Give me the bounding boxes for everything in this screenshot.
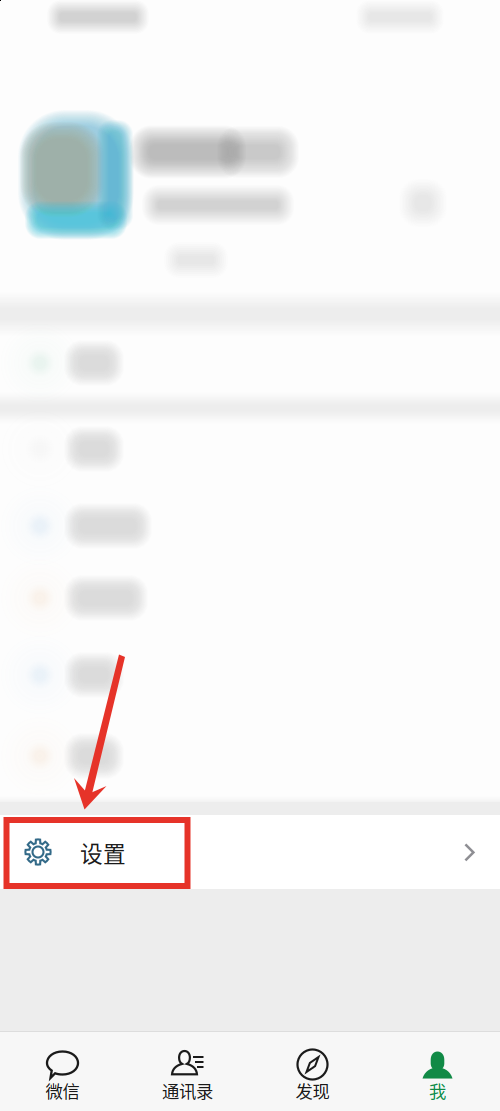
staticText: 通讯录 (162, 1078, 213, 1103)
button[interactable]: 我 (375, 1032, 500, 1111)
button[interactable]: 微信 (0, 1032, 125, 1111)
staticText: 设置 (80, 836, 126, 869)
button[interactable]: 设置 (0, 815, 500, 889)
staticText: 发现 (295, 1078, 329, 1103)
button[interactable]: 通讯录 (125, 1032, 250, 1111)
button[interactable]: 发现 (250, 1032, 375, 1111)
staticText: 微信 (45, 1078, 79, 1103)
staticText: 我 (429, 1078, 446, 1103)
